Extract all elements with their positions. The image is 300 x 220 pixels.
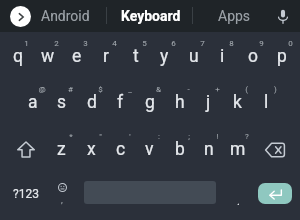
staticText: Keyboard <box>121 8 181 24</box>
staticText: k <box>233 92 242 113</box>
staticText: + <box>215 85 220 94</box>
staticText: : <box>158 132 160 141</box>
button[interactable]: ?123 <box>3 171 48 217</box>
staticText: 8 <box>229 39 234 48</box>
button[interactable]: d <box>77 80 106 126</box>
button[interactable]: z <box>47 127 76 173</box>
staticText: ( <box>245 85 248 94</box>
button[interactable]: k <box>223 80 252 126</box>
button[interactable]: Backspace <box>253 127 297 173</box>
staticText: # <box>68 85 73 94</box>
button[interactable]: x <box>77 127 106 173</box>
button[interactable]: l <box>252 80 281 126</box>
staticText: ! <box>216 132 219 141</box>
staticText: g <box>145 92 155 113</box>
staticText: 0 <box>288 39 293 48</box>
button[interactable]: p <box>267 34 296 80</box>
staticText: - <box>187 85 190 94</box>
button[interactable]: t <box>121 34 150 80</box>
staticText: c <box>116 139 126 160</box>
button[interactable]: c <box>106 127 135 173</box>
staticText: 1 <box>24 39 29 48</box>
staticText: n <box>204 139 214 160</box>
button[interactable]: Android <box>32 0 98 32</box>
staticText: d <box>87 92 97 113</box>
staticText: 6 <box>171 39 176 48</box>
button[interactable]: j <box>194 80 223 126</box>
button[interactable]: b <box>165 127 194 173</box>
staticText: l <box>264 92 269 113</box>
staticText: j <box>206 92 211 113</box>
staticText: i <box>220 46 225 67</box>
button[interactable]: f <box>106 80 135 126</box>
staticText: * <box>69 132 73 141</box>
button[interactable]: v <box>135 127 164 173</box>
button[interactable]: Voice input <box>269 0 297 32</box>
button[interactable]: n <box>194 127 223 173</box>
staticText: @ <box>38 85 46 94</box>
staticText: x <box>87 139 96 160</box>
button[interactable]: i <box>208 34 237 80</box>
staticText: Android <box>41 8 90 24</box>
button[interactable]: s <box>47 80 76 126</box>
button[interactable]: Apps <box>199 0 269 32</box>
staticText: m <box>230 139 246 160</box>
button[interactable]: . <box>224 171 252 217</box>
staticText: 9 <box>259 39 264 48</box>
button[interactable]: r <box>91 34 120 80</box>
button[interactable]: Forward <box>10 6 31 27</box>
staticText: u <box>189 46 199 67</box>
button[interactable]: Keyboard <box>108 0 193 32</box>
button[interactable]: w <box>33 34 62 80</box>
staticText: , <box>61 195 63 206</box>
button[interactable]: e <box>62 34 91 80</box>
staticText: _ <box>128 85 132 94</box>
staticText: ) <box>274 85 277 94</box>
staticText: h <box>175 92 185 113</box>
staticText: ?123 <box>13 187 39 201</box>
button[interactable]: u <box>179 34 208 80</box>
staticText: 2 <box>54 39 59 48</box>
staticText: Apps <box>218 8 251 24</box>
button[interactable]: a <box>18 80 47 126</box>
button[interactable]: m <box>223 127 252 173</box>
button[interactable]: o <box>238 34 267 80</box>
button[interactable]: y <box>150 34 179 80</box>
staticText: 4 <box>112 39 117 48</box>
staticText: e <box>72 46 82 67</box>
staticText: 3 <box>83 39 88 48</box>
staticText: s <box>57 92 67 113</box>
button[interactable]: Enter <box>258 183 292 204</box>
staticText: 7 <box>200 39 205 48</box>
staticText: q <box>13 46 23 67</box>
staticText: p <box>277 46 287 67</box>
staticText: $ <box>98 85 103 94</box>
staticText: t <box>133 46 139 67</box>
staticText: z <box>57 139 66 160</box>
staticText: " <box>99 132 102 141</box>
button[interactable]: Shift <box>4 126 48 172</box>
staticText: 5 <box>142 39 147 48</box>
button[interactable]: h <box>165 80 194 126</box>
staticText: & <box>156 85 161 94</box>
staticText: o <box>248 46 258 67</box>
staticText: . <box>237 195 240 208</box>
staticText: a <box>28 92 38 113</box>
staticText: ? <box>245 132 249 141</box>
button[interactable]: g <box>135 80 164 126</box>
staticText: r <box>103 46 109 67</box>
staticText: w <box>41 46 55 67</box>
button[interactable]: q <box>3 34 32 80</box>
staticText: v <box>145 139 154 160</box>
staticText: f <box>117 92 124 113</box>
staticText: ' <box>129 132 131 141</box>
staticText: y <box>160 46 169 67</box>
button[interactable]: Emoji <box>48 171 76 217</box>
staticText: ; <box>188 132 190 141</box>
staticText: b <box>175 139 185 160</box>
